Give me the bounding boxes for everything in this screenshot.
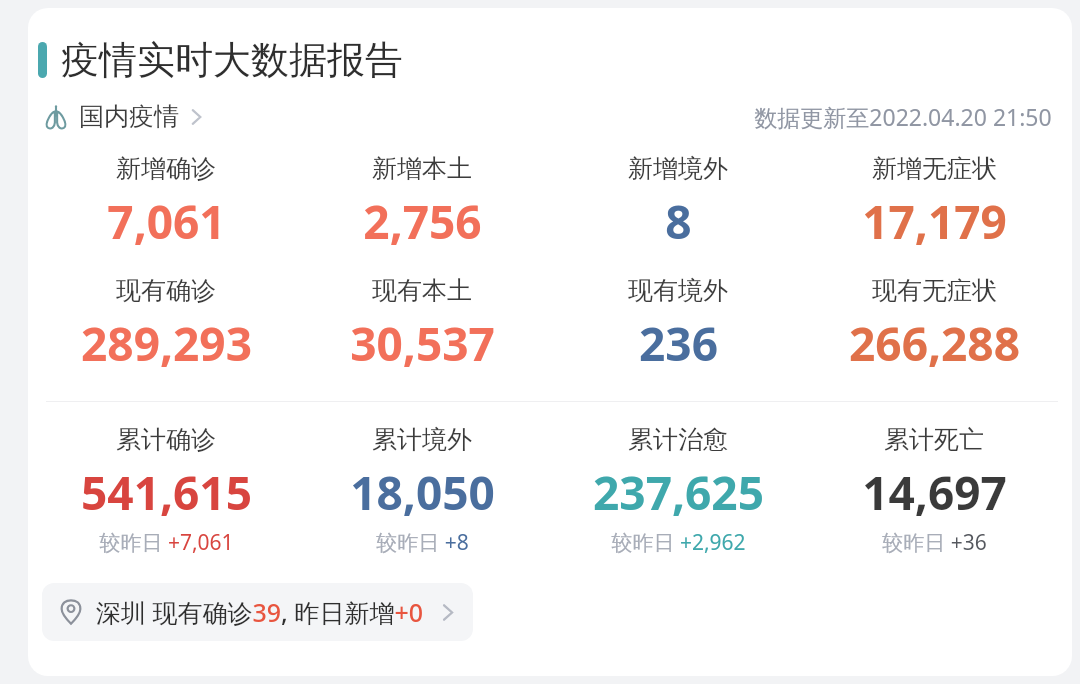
staticText: 较昨日 +7,061 xyxy=(99,528,234,557)
staticText: 新增境外 xyxy=(628,153,728,184)
other: Location xyxy=(58,599,84,625)
staticText: 17,179 xyxy=(862,190,1007,253)
staticText: 国内疫情 xyxy=(79,101,179,132)
staticText: 289,293 xyxy=(81,312,252,375)
staticText: 现有境外 xyxy=(628,275,728,306)
staticText: 30,537 xyxy=(350,312,495,375)
staticText: 较昨日 +8 xyxy=(376,528,469,557)
staticText: 8 xyxy=(665,190,692,253)
staticText: 现有本土 xyxy=(372,275,472,306)
staticText: 累计确诊 xyxy=(116,424,216,455)
staticText: 新增确诊 xyxy=(116,153,216,184)
button[interactable]: Domestic epidemic xyxy=(40,98,207,135)
staticText: 较昨日 +2,962 xyxy=(611,528,746,557)
staticText: 236 xyxy=(639,312,718,375)
staticText: 18,050 xyxy=(350,461,495,524)
staticText: 累计治愈 xyxy=(628,424,728,455)
staticText: 现有无症状 xyxy=(872,275,997,306)
staticText: 累计死亡 xyxy=(884,424,984,455)
staticText: 新增本土 xyxy=(372,153,472,184)
staticText: 541,615 xyxy=(81,461,252,524)
staticText: 2,756 xyxy=(363,190,482,253)
staticText: 237,625 xyxy=(593,461,764,524)
staticText: 疫情实时大数据报告 xyxy=(61,36,403,84)
staticText: 新增无症状 xyxy=(872,153,997,184)
staticText: 数据更新至2022.04.20 21:50 xyxy=(754,101,1052,132)
staticText: 深圳 现有确诊39, 昨日新增+0 xyxy=(96,595,424,629)
staticText: 14,697 xyxy=(862,461,1007,524)
other: Domestic epidemic xyxy=(42,103,70,131)
staticText: 累计境外 xyxy=(372,424,472,455)
staticText: 较昨日 +36 xyxy=(882,528,987,557)
button[interactable]: Location xyxy=(42,583,473,641)
staticText: 266,288 xyxy=(849,312,1020,375)
staticText: 现有确诊 xyxy=(116,275,216,306)
staticText: 7,061 xyxy=(107,190,226,253)
